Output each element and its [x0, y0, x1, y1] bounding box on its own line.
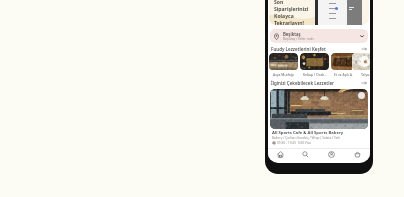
staticText: Kolayca [274, 13, 294, 20]
staticText: 09:30 - 19:45 9:40 Visa [277, 141, 311, 145]
button[interactable]: Search [293, 149, 318, 160]
button[interactable]: Asya Mutfağı [269, 53, 298, 78]
staticText: Beşiktaş / Etiler mah. [283, 37, 315, 41]
button[interactable]: Talya... [352, 53, 370, 78]
staticText: Et ve Açık Ateş [334, 72, 357, 77]
staticText: All Sports Cafe & All Sports Bakery [272, 130, 344, 136]
button[interactable]: Kebap / Ocak... [300, 53, 329, 78]
staticText: İlginizi Çekebilecek Lezzetler [271, 80, 334, 86]
staticText: Son [274, 0, 284, 6]
button[interactable]: Beşiktaş [270, 29, 368, 43]
staticText: Bakery / Çorbacı Sandviç / Wrap| Salata … [272, 136, 341, 140]
button[interactable]: Favorite [358, 92, 365, 99]
button[interactable]: Favorite [270, 89, 368, 145]
staticText: Talya... [361, 72, 370, 77]
staticText: Kebap / Ocak... [303, 72, 327, 77]
other: Change address [359, 33, 365, 39]
button[interactable]: Home [268, 149, 293, 160]
button[interactable]: See all [361, 80, 367, 86]
button[interactable]: Basket [344, 149, 370, 160]
staticText: Beşiktaş [283, 31, 301, 37]
button[interactable]: Et ve Açık Ateş [331, 53, 360, 78]
staticText: Tekrarlayın! [274, 20, 305, 25]
button[interactable]: Profile [318, 149, 344, 160]
staticText: Siparişlerinizi [274, 6, 309, 13]
button[interactable]: Son [269, 0, 369, 25]
staticText: Asya Mutfağı [273, 72, 294, 77]
staticText: Fuudy Lezzetlerini Keşfet [271, 46, 326, 52]
button[interactable]: See all [361, 46, 367, 52]
